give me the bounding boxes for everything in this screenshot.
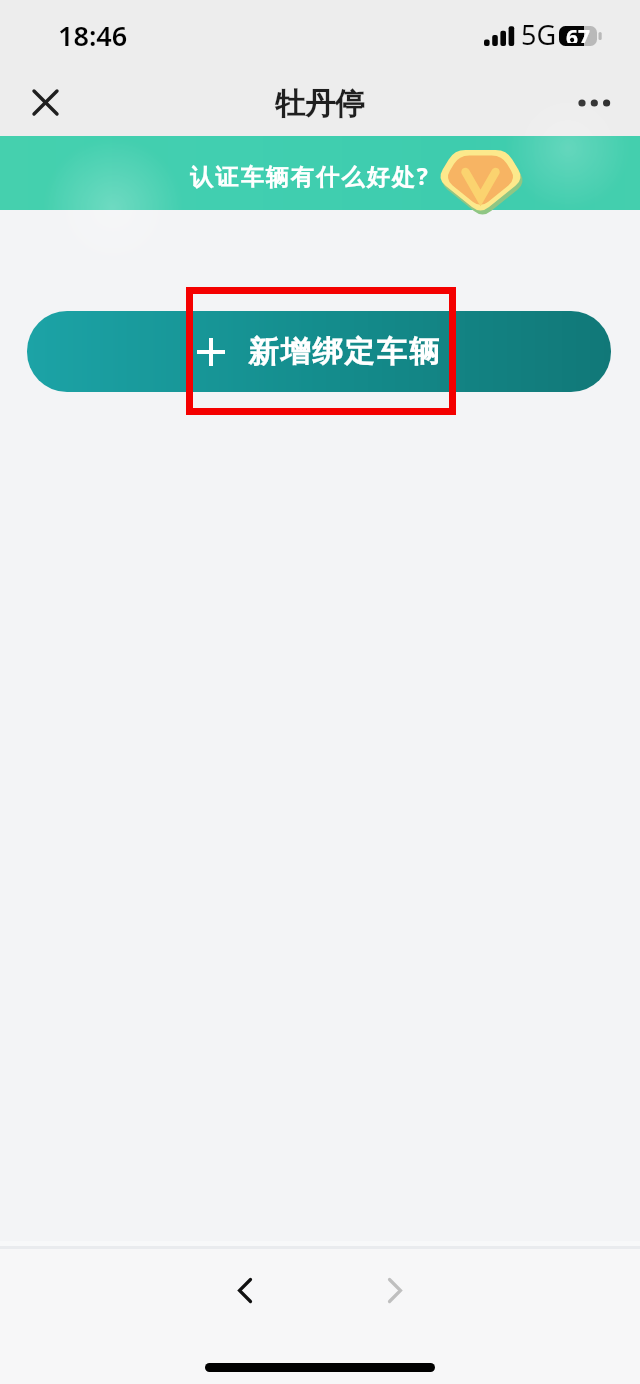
button[interactable]: 认证车辆有什么好处? <box>0 136 640 210</box>
staticText: 牡丹停 <box>275 85 365 123</box>
button[interactable]: Close <box>13 71 77 133</box>
staticText: 67 <box>566 23 591 43</box>
staticText: 5G <box>521 16 557 53</box>
button[interactable]: Forward <box>364 1259 426 1321</box>
button[interactable]: Back <box>214 1259 276 1321</box>
staticText: 新增绑定车辆 <box>248 333 442 371</box>
button[interactable]: 新增绑定车辆 <box>27 311 611 392</box>
staticText: 18:46 <box>58 17 128 54</box>
button[interactable]: More options <box>563 71 627 135</box>
staticText: 认证车辆有什么好处? <box>190 160 430 191</box>
